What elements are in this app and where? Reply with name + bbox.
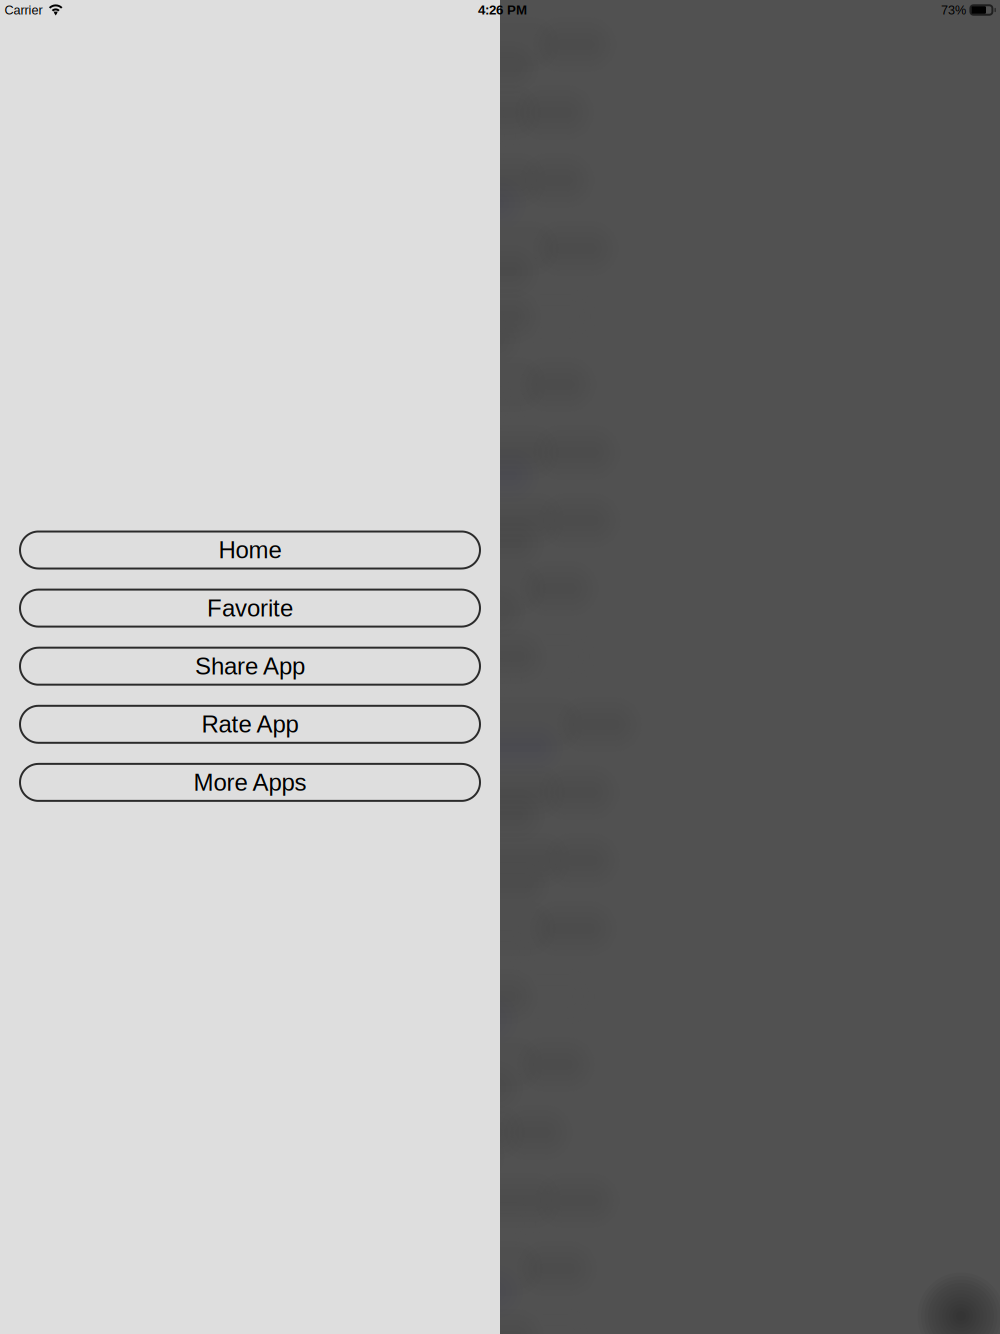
button[interactable]: Favorite <box>20 590 480 627</box>
button[interactable]: Home <box>20 531 480 568</box>
button[interactable]: Share App <box>20 648 480 685</box>
button[interactable]: More Apps <box>20 764 480 801</box>
staticText: More Apps <box>193 769 306 796</box>
staticText: Carrier <box>4 3 42 17</box>
staticText: 73% <box>941 3 966 17</box>
button[interactable]: Rate App <box>20 706 480 743</box>
staticText: Rate App <box>201 711 298 738</box>
staticText: Favorite <box>207 595 293 621</box>
staticText: Share App <box>195 653 305 680</box>
staticText: Home <box>218 537 281 563</box>
staticText: 4:26 PM <box>478 3 527 17</box>
